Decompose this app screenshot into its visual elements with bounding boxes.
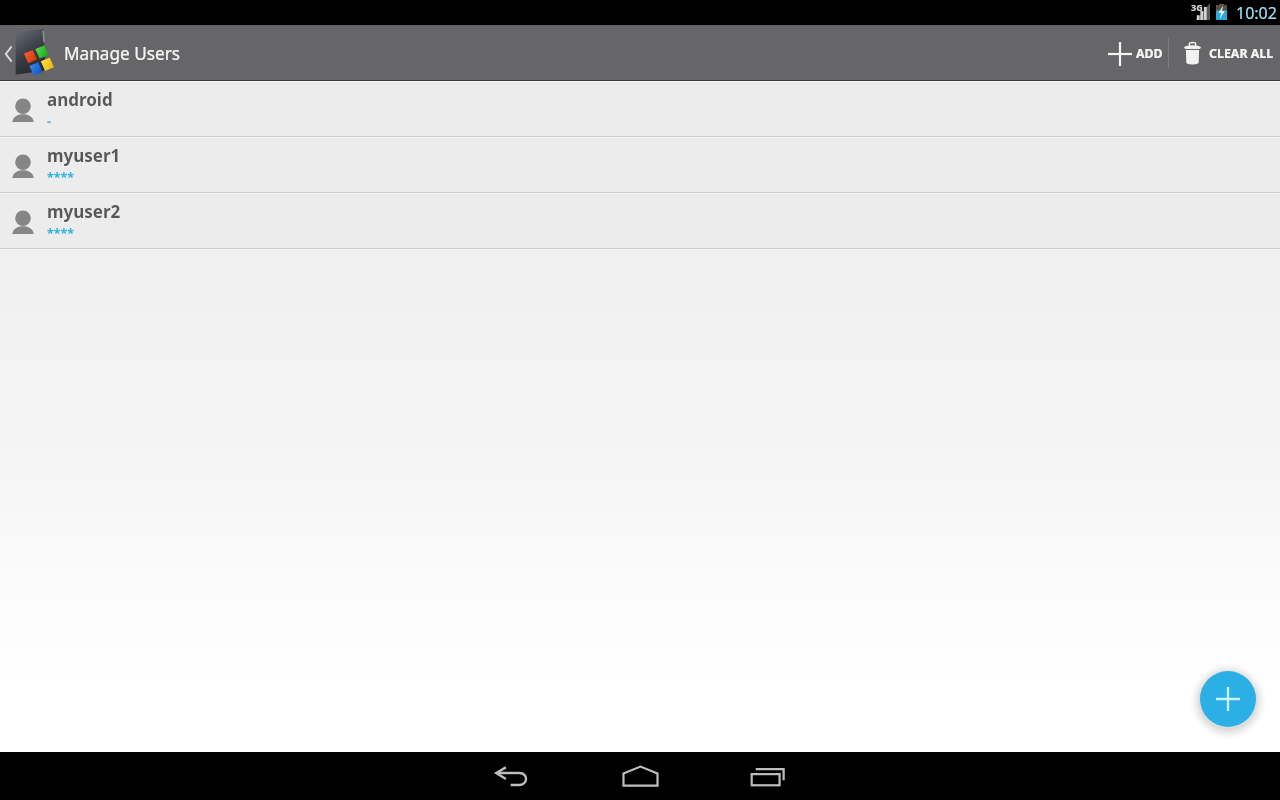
staticText: **** <box>47 225 75 242</box>
staticText: CLEAR ALL <box>1209 45 1274 62</box>
button[interactable]: ADD <box>1096 25 1168 82</box>
staticText: 10:02 <box>1236 2 1277 24</box>
button[interactable]: Navigate up <box>0 26 16 81</box>
button[interactable]: CLEAR ALL <box>1172 25 1280 82</box>
button[interactable]: Home <box>576 752 704 800</box>
staticText: - <box>47 113 52 130</box>
button[interactable]: myuser2 <box>0 194 1280 248</box>
staticText: Manage Users <box>64 42 181 65</box>
staticText: android <box>47 88 113 111</box>
staticText: 3G <box>1191 1 1203 13</box>
button[interactable]: myuser1 <box>0 138 1280 192</box>
staticText: myuser1 <box>47 144 121 167</box>
staticText: myuser2 <box>47 200 121 223</box>
staticText: ADD <box>1136 45 1163 62</box>
button[interactable]: android <box>0 82 1280 136</box>
button[interactable]: Add user <box>1200 671 1256 727</box>
staticText: **** <box>47 169 75 186</box>
button[interactable]: Back <box>448 752 576 800</box>
button[interactable]: Recent apps <box>704 752 832 800</box>
